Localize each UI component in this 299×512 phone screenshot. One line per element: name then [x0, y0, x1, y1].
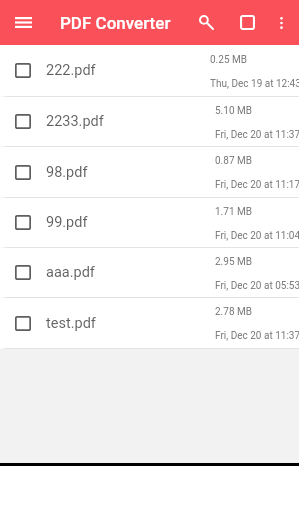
- button[interactable]: Select all: [229, 0, 265, 45]
- staticText: Fri, Dec 20 at 11:37: [215, 129, 299, 141]
- button[interactable]: 222.pdf: [0, 45, 299, 97]
- staticText: aaa.pdf: [46, 264, 213, 281]
- staticText: 0.87 MB: [215, 155, 252, 167]
- staticText: Thu, Dec 19 at 12:43: [210, 78, 299, 90]
- button[interactable]: test.pdf: [0, 298, 299, 349]
- staticText: 5.10 MB: [215, 105, 252, 117]
- button[interactable]: aaa.pdf: [0, 248, 299, 298]
- staticText: Fri, Dec 20 at 11:04: [215, 230, 299, 242]
- staticText: 222.pdf: [46, 62, 208, 79]
- staticText: Fri, Dec 20 at 05:53: [215, 280, 299, 292]
- staticText: Fri, Dec 20 at 11:17: [215, 179, 299, 191]
- staticText: 2233.pdf: [46, 113, 213, 130]
- button[interactable]: Search: [188, 0, 224, 45]
- staticText: 1.71 MB: [215, 206, 252, 218]
- staticText: test.pdf: [46, 315, 213, 332]
- staticText: 99.pdf: [46, 214, 213, 231]
- staticText: 2.95 MB: [215, 256, 252, 268]
- staticText: 2.78 MB: [215, 306, 252, 318]
- button[interactable]: 2233.pdf: [0, 97, 299, 147]
- staticText: Fri, Dec 20 at 11:37: [215, 330, 299, 342]
- button[interactable]: 98.pdf: [0, 147, 299, 198]
- staticText: 0.25 MB: [210, 54, 247, 66]
- button[interactable]: Open navigation drawer: [3, 0, 43, 45]
- button[interactable]: 99.pdf: [0, 198, 299, 248]
- staticText: PDF Converter: [60, 13, 171, 33]
- button[interactable]: More options: [265, 0, 297, 45]
- staticText: 98.pdf: [46, 164, 213, 181]
